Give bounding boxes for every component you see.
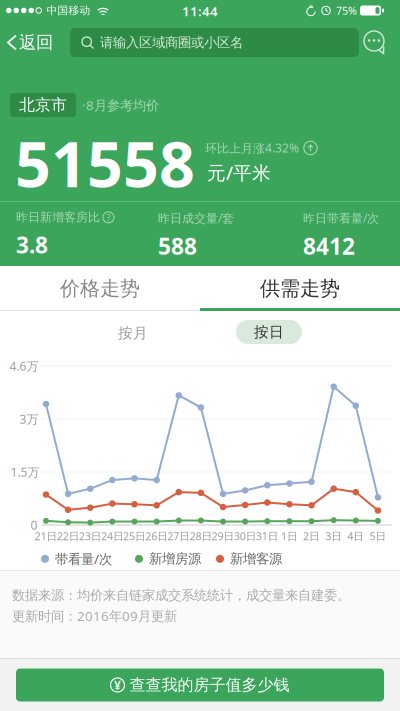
- staticText: 昨日带看量/次: [303, 210, 379, 226]
- staticText: 29日: [211, 529, 234, 543]
- button[interactable]: 按日: [236, 320, 302, 344]
- button[interactable]: 返回: [0, 21, 53, 64]
- staticText: 带看量/次: [55, 550, 112, 568]
- staticText: 75%: [336, 3, 357, 18]
- staticText: 按月: [118, 324, 148, 342]
- staticText: 环比上月涨4.32%: [205, 140, 299, 156]
- button[interactable]: 请输入区域商圈或小区名: [70, 28, 359, 57]
- staticText: 查查我的房子值多少钱: [129, 675, 289, 695]
- staticText: 1日: [281, 529, 298, 543]
- staticText: 30日: [234, 529, 257, 543]
- staticText: 昨日新增客房比: [16, 210, 100, 225]
- staticText: 新增客源: [230, 551, 282, 567]
- staticText: 26日: [145, 529, 168, 543]
- staticText: 28日: [189, 529, 212, 543]
- staticText: 31日: [256, 529, 279, 543]
- staticText: 昨日成交量/套: [158, 210, 234, 226]
- staticText: 588: [158, 231, 197, 261]
- staticText: 5日: [369, 529, 386, 543]
- staticText: 供需走势: [260, 276, 340, 301]
- staticText: 22日: [57, 529, 80, 543]
- staticText: 21日: [34, 529, 57, 543]
- staticText: 北京市: [19, 95, 67, 115]
- staticText: 23日: [79, 529, 102, 543]
- staticText: 3.8: [16, 230, 48, 260]
- button[interactable]: 按月: [83, 311, 183, 355]
- staticText: 3万: [19, 411, 38, 427]
- staticText: 2日: [303, 529, 320, 543]
- staticText: ?: [106, 211, 110, 224]
- button[interactable]: 价格走势: [0, 266, 200, 311]
- staticText: 价格走势: [60, 276, 140, 301]
- staticText: 0: [30, 517, 37, 533]
- staticText: 27日: [167, 529, 190, 543]
- staticText: 中国移动: [46, 4, 90, 17]
- staticText: ·8月参考均价: [82, 96, 159, 114]
- staticText: 更新时间：2016年09月更新: [12, 607, 177, 625]
- staticText: 25日: [123, 529, 146, 543]
- staticText: 元/平米: [207, 160, 271, 185]
- staticText: 8412: [303, 231, 355, 261]
- staticText: 数据来源：均价来自链家成交系统统计，成交量来自建委。: [12, 587, 350, 603]
- staticText: 返回: [19, 32, 53, 53]
- staticText: ¥: [114, 677, 121, 693]
- button[interactable]: [361, 29, 387, 55]
- button[interactable]: 北京市: [10, 93, 76, 117]
- staticText: 按日: [254, 323, 284, 341]
- staticText: 3日: [325, 529, 342, 543]
- staticText: 4日: [347, 529, 364, 543]
- staticText: 请输入区域商圈或小区名: [100, 34, 243, 51]
- staticText: 新增房源: [149, 551, 201, 567]
- staticText: 11:44: [182, 2, 218, 20]
- staticText: 1.5万: [10, 464, 39, 480]
- button[interactable]: ¥: [16, 668, 384, 701]
- staticText: 51558: [15, 121, 195, 205]
- staticText: 4.6万: [9, 358, 38, 374]
- staticText: 24日: [101, 529, 124, 543]
- button[interactable]: 供需走势: [200, 266, 400, 311]
